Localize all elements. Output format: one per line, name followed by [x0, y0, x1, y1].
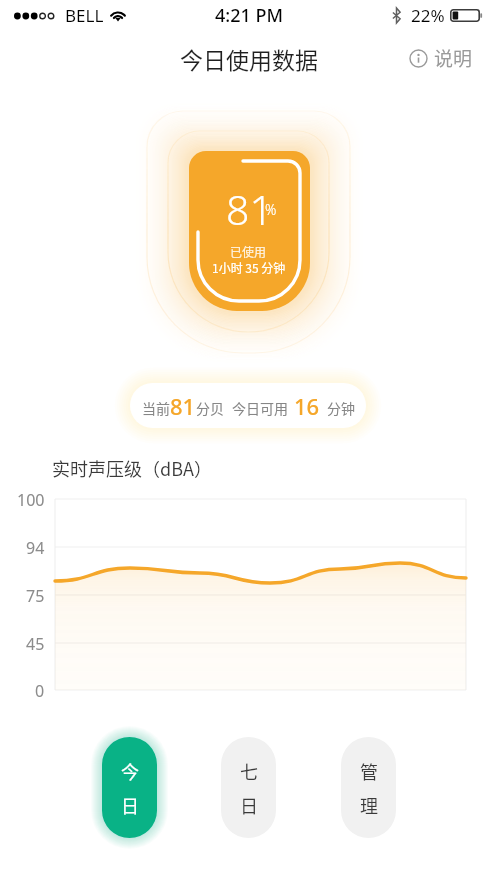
- staticText: 81: [226, 181, 273, 237]
- staticText: 22%: [411, 4, 445, 27]
- staticText: 4:21 PM: [215, 3, 283, 28]
- staticText: 今日可用: [232, 398, 288, 418]
- button[interactable]: 管: [341, 737, 396, 838]
- button[interactable]: 今: [102, 737, 157, 838]
- button[interactable]: 当前: [130, 383, 366, 428]
- staticText: 分钟: [327, 398, 355, 418]
- staticText: 日: [240, 792, 258, 818]
- staticText: 今: [121, 758, 139, 784]
- button[interactable]: Info, 说明: [409, 44, 473, 72]
- other: Info, 说明: [409, 49, 428, 68]
- staticText: 已使用: [230, 243, 267, 260]
- staticText: 1小时 35 分钟: [212, 259, 286, 276]
- staticText: 说明: [434, 44, 473, 72]
- staticText: BELL: [65, 4, 104, 27]
- staticText: 75: [26, 585, 45, 607]
- staticText: 81: [170, 391, 196, 421]
- staticText: 16: [294, 391, 320, 421]
- staticText: 当前: [142, 398, 170, 418]
- staticText: %: [265, 200, 277, 219]
- staticText: 实时声压级（dBA）: [52, 455, 212, 481]
- staticText: 100: [17, 489, 45, 511]
- staticText: 94: [26, 537, 45, 559]
- staticText: 理: [360, 792, 378, 818]
- staticText: 今日使用数据: [180, 42, 318, 75]
- staticText: 45: [26, 633, 45, 655]
- staticText: 管: [360, 758, 378, 784]
- button[interactable]: 七: [221, 737, 276, 838]
- staticText: 分贝: [196, 398, 224, 418]
- staticText: 0: [35, 680, 45, 702]
- staticText: 七: [240, 758, 258, 784]
- staticText: 日: [121, 792, 139, 818]
